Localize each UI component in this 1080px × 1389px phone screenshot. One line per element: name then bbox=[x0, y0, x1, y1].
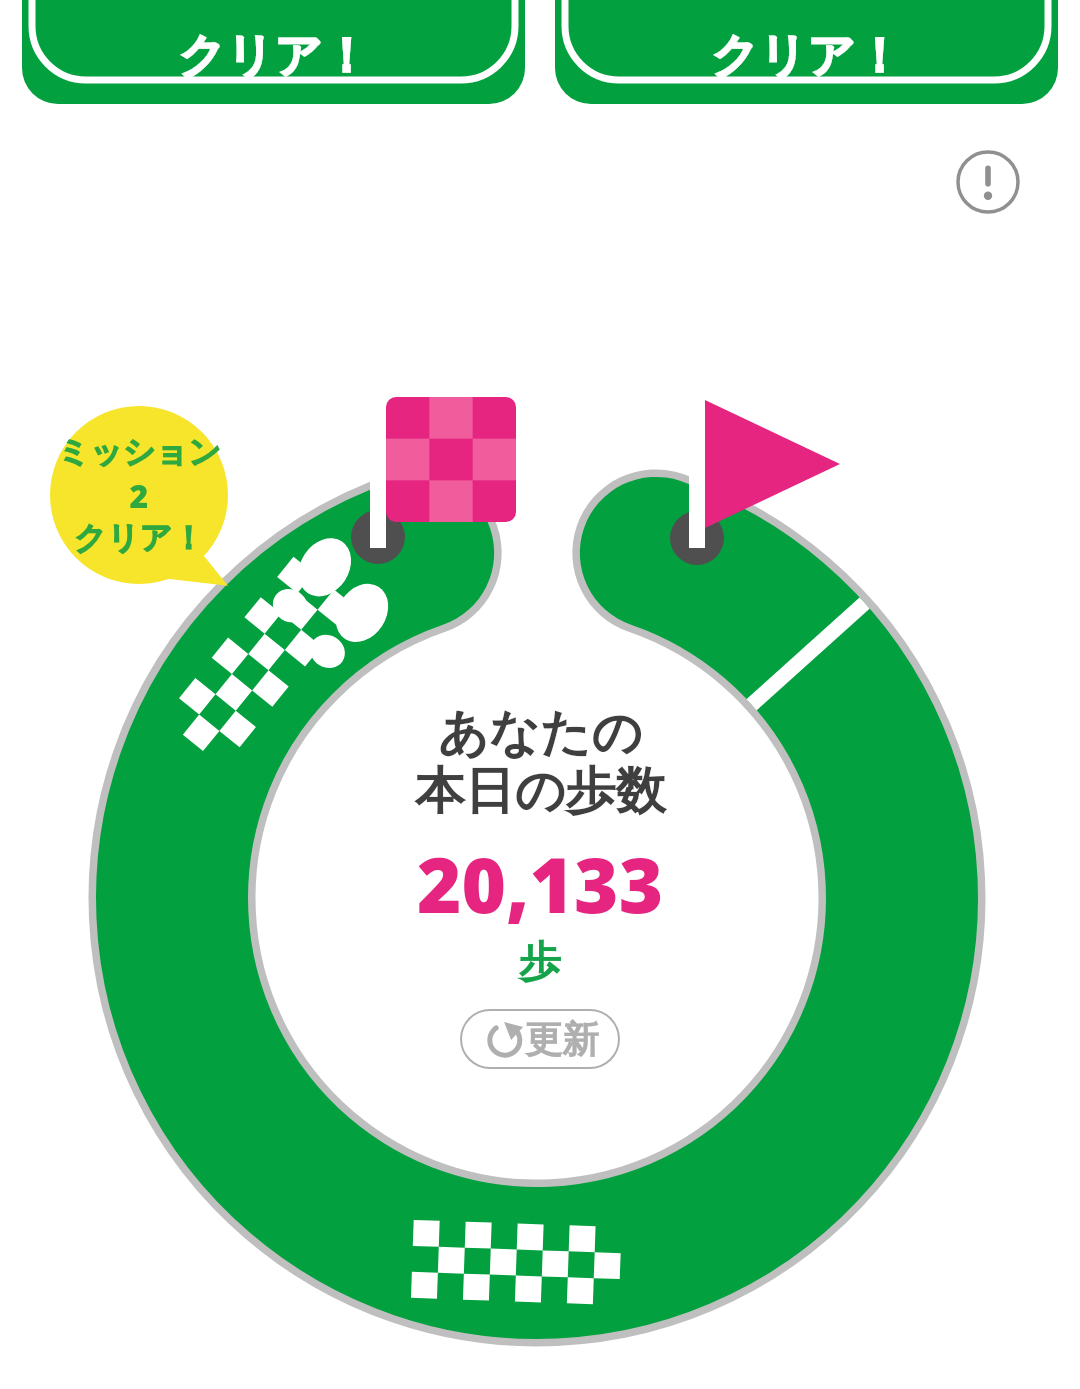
button[interactable]: 更新 bbox=[460, 1009, 620, 1069]
staticText: 歩 bbox=[519, 936, 561, 989]
button[interactable]: ミッション2 クリア！ bbox=[50, 406, 228, 584]
button[interactable] bbox=[0, 0, 1080, 1389]
button[interactable]: クリア！ bbox=[555, 0, 1058, 104]
button[interactable]: クリア！ bbox=[22, 0, 525, 104]
button[interactable]: Information bbox=[955, 149, 1021, 215]
staticText: 更新 bbox=[525, 1016, 599, 1063]
staticText: あなたの 本日の歩数 bbox=[414, 702, 666, 822]
staticText: クリア！ bbox=[178, 27, 370, 86]
staticText: 20,133 bbox=[417, 832, 664, 936]
staticText: クリア！ bbox=[711, 27, 903, 86]
staticText: ミッション2 クリア！ bbox=[50, 432, 228, 559]
